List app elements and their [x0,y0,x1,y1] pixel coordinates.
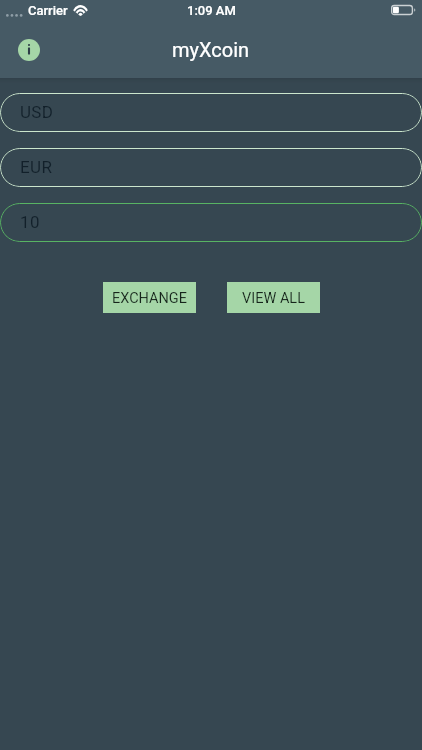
button[interactable]: Info [18,39,40,61]
button[interactable]: EUR [0,148,422,187]
staticText: 1:09 AM [187,3,236,18]
button[interactable]: USD [0,93,422,132]
button[interactable]: EXCHANGE [103,282,196,313]
staticText: EXCHANGE [112,290,187,307]
staticText: Carrier [28,3,68,18]
staticText: VIEW ALL [242,290,305,307]
staticText: USD [20,102,54,122]
staticText: 10 [20,212,40,232]
staticText: EUR [20,157,53,177]
button[interactable]: VIEW ALL [227,282,320,313]
staticText: myXcoin [172,38,250,61]
button[interactable]: 10 [0,203,422,242]
